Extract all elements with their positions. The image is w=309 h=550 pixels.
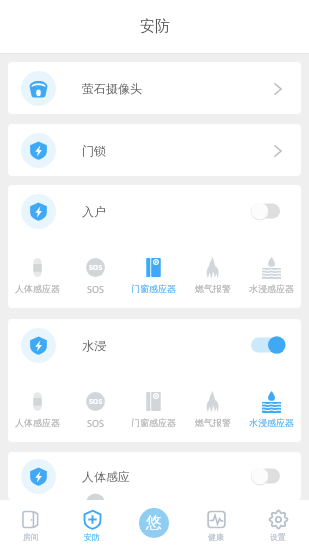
button[interactable]: Turn on [251, 467, 286, 485]
button[interactable]: 人体感应器 [8, 256, 66, 294]
staticText: 入户 [82, 204, 106, 219]
staticText: 门锁 [82, 143, 106, 158]
staticText: 燃气报警 [195, 417, 231, 428]
button[interactable]: SOS [66, 256, 124, 295]
button[interactable]: 燃气报警 [183, 256, 242, 294]
button[interactable]: 人体感应器 [8, 390, 66, 428]
staticText: 健康 [208, 532, 224, 542]
button[interactable]: 燃气报警 [183, 390, 242, 428]
button[interactable]: 水浸感应器 [242, 390, 301, 428]
button[interactable]: SOS [66, 390, 124, 429]
button[interactable]: 水浸 [21, 319, 286, 371]
button[interactable]: Turn off [251, 336, 286, 354]
staticText: SOS [87, 417, 104, 429]
staticText: 安防 [84, 532, 100, 542]
staticText: 悠 [146, 513, 162, 533]
button[interactable]: 健康 [185, 500, 247, 550]
staticText: 人体感应器 [15, 283, 60, 294]
staticText: 人体感应 [82, 469, 130, 484]
button[interactable]: 水浸感应器 [242, 256, 301, 294]
button[interactable]: 房间 [0, 500, 61, 550]
staticText: 水浸感应器 [249, 417, 294, 428]
staticText: SOS [89, 263, 103, 273]
staticText: 门窗感应器 [131, 283, 176, 294]
button[interactable]: 门锁 [8, 124, 301, 176]
button[interactable]: 人体感应 [21, 452, 286, 500]
staticText: SOS [89, 397, 103, 407]
staticText: 设置 [270, 532, 286, 542]
button[interactable]: 设置 [247, 500, 309, 550]
staticText: 房间 [23, 532, 39, 542]
button[interactable]: Turn on [251, 202, 286, 220]
staticText: SOS [87, 283, 104, 295]
staticText: 安防 [140, 17, 170, 36]
staticText: 水浸感应器 [249, 283, 294, 294]
staticText: 燃气报警 [195, 283, 231, 294]
button[interactable]: 门窗感应器 [124, 256, 183, 294]
staticText: 萤石摄像头 [82, 81, 142, 96]
staticText: 水浸 [82, 338, 106, 353]
staticText: 门窗感应器 [131, 417, 176, 428]
staticText: 人体感应器 [15, 417, 60, 428]
button[interactable]: 安防 [61, 500, 123, 550]
button[interactable]: 悠 [123, 500, 185, 550]
button[interactable]: 入户 [21, 185, 286, 237]
button[interactable]: 萤石摄像头 [8, 62, 301, 114]
button[interactable]: 门窗感应器 [124, 390, 183, 428]
